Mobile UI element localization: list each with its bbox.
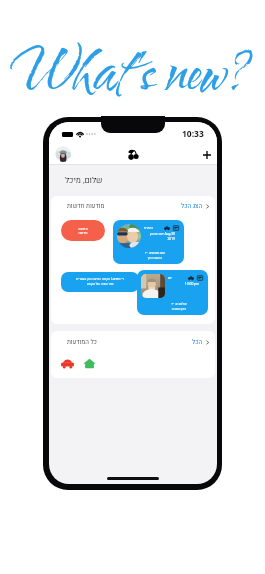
button[interactable]: הצג הכל — [181, 202, 210, 211]
button[interactable]: כותרת — [113, 220, 184, 264]
staticText: 10:33 — [182, 128, 204, 140]
staticText: הצג הכל — [181, 202, 203, 211]
staticText: ← שלום רב כאן כתובת — [164, 302, 194, 312]
staticText: יום — [168, 275, 173, 280]
staticText: הכל — [192, 338, 203, 347]
staticText: 10:00 pm — [167, 281, 199, 286]
staticText: ← שם משפחה כתובת כאן — [140, 251, 170, 261]
staticText: What's new? — [9, 34, 250, 115]
button[interactable]: טקסט הודעה כאן בעברית Lorem → עוד שורה ש… — [61, 272, 139, 292]
staticText: טקסט הודעה כאן בעברית Lorem → עוד שורה ש… — [76, 277, 124, 287]
button[interactable]: Profile — [55, 146, 71, 162]
staticText: כותרת — [144, 225, 153, 230]
staticText: יום ראשון Aug 30 2019 — [143, 231, 175, 241]
button[interactable]: מודעה חדשה — [61, 220, 105, 241]
staticText: כל המודעות — [67, 338, 97, 347]
button[interactable]: הכל — [192, 338, 210, 347]
staticText: מודעה חדשה — [78, 226, 88, 236]
staticText: מודעות חדשות — [67, 202, 105, 211]
button[interactable]: Add — [200, 148, 213, 161]
button[interactable]: Vehicles — [60, 356, 75, 371]
button[interactable]: יום — [137, 270, 208, 315]
button[interactable]: Homes — [82, 356, 97, 371]
staticText: שלום, מיכל — [65, 175, 103, 187]
